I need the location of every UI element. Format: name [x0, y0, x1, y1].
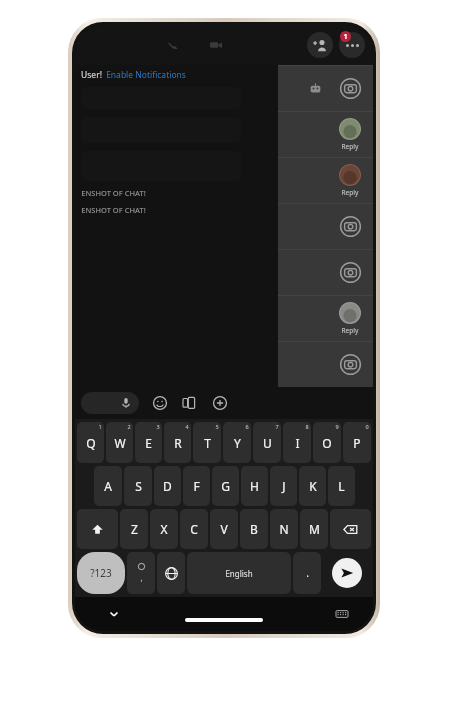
- button[interactable]: R: [164, 422, 191, 463]
- staticText: 3: [156, 423, 160, 430]
- button[interactable]: Shift: [77, 509, 118, 549]
- staticText: ENSHOT OF CHAT!: [81, 188, 146, 198]
- button[interactable]: Camera: [278, 249, 373, 295]
- button[interactable]: Change language: [157, 552, 185, 594]
- button[interactable]: More options: [339, 32, 365, 58]
- button[interactable]: B: [240, 509, 268, 549]
- button[interactable]: Camera: [278, 203, 373, 249]
- staticText: M: [309, 521, 320, 537]
- button[interactable]: Reply: [278, 295, 373, 341]
- staticText: 0: [365, 423, 369, 430]
- button[interactable]: Video call: [205, 34, 227, 56]
- staticText: Reply: [341, 142, 359, 151]
- button[interactable]: F: [183, 466, 210, 506]
- staticText: G: [221, 478, 230, 494]
- staticText: I: [295, 435, 300, 451]
- staticText: 2: [127, 423, 131, 430]
- button[interactable]: Switch keyboard: [331, 603, 353, 625]
- other: Camera: [340, 78, 361, 99]
- button[interactable]: Reply: [278, 111, 373, 157]
- staticText: ENSHOT OF CHAT!: [81, 205, 146, 215]
- staticText: D: [163, 478, 172, 494]
- staticText: F: [193, 478, 200, 494]
- button[interactable]: K: [299, 466, 326, 506]
- button[interactable]: Camera: [278, 341, 373, 387]
- staticText: E: [145, 435, 152, 451]
- staticText: X: [160, 521, 168, 537]
- staticText: .: [306, 566, 309, 580]
- button[interactable]: I: [283, 422, 311, 463]
- staticText: ,: [140, 572, 143, 583]
- button[interactable]: D: [154, 466, 181, 506]
- staticText: N: [279, 521, 289, 537]
- button[interactable]: English: [187, 552, 291, 594]
- staticText: 1: [343, 32, 348, 42]
- staticText: 5: [215, 423, 219, 430]
- button[interactable]: O: [313, 422, 341, 463]
- staticText: Y: [234, 435, 241, 451]
- button[interactable]: Enable Notifications: [106, 69, 186, 81]
- staticText: A: [104, 478, 112, 494]
- button[interactable]: U: [253, 422, 281, 463]
- staticText: English: [225, 568, 253, 579]
- button[interactable]: P: [343, 422, 371, 463]
- staticText: U: [263, 435, 272, 451]
- button[interactable]: L: [328, 466, 355, 506]
- button[interactable]: X: [150, 509, 178, 549]
- button[interactable]: Camera: [278, 65, 373, 111]
- button[interactable]: Send: [323, 552, 371, 594]
- button[interactable]: Y: [223, 422, 251, 463]
- staticText: P: [353, 435, 361, 451]
- button[interactable]: W: [106, 422, 133, 463]
- button[interactable]: H: [241, 466, 268, 506]
- staticText: Q: [86, 435, 96, 451]
- staticText: 9: [335, 423, 339, 430]
- staticText: W: [114, 435, 126, 451]
- button[interactable]: Q: [77, 422, 104, 463]
- button[interactable]: ?123: [77, 552, 125, 594]
- button[interactable]: Emoji and comma: [127, 552, 155, 594]
- staticText: Enable Notifications: [106, 69, 186, 81]
- other: Camera: [340, 354, 361, 375]
- button[interactable]: T: [193, 422, 221, 463]
- button[interactable]: Voice message: [81, 392, 139, 414]
- button[interactable]: V: [210, 509, 238, 549]
- button[interactable]: Call: [161, 34, 183, 56]
- staticText: L: [338, 478, 345, 494]
- staticText: T: [204, 435, 211, 451]
- staticText: Reply: [341, 188, 359, 197]
- button[interactable]: Stickers: [179, 392, 201, 414]
- button[interactable]: J: [270, 466, 297, 506]
- button[interactable]: C: [180, 509, 208, 549]
- button[interactable]: N: [270, 509, 298, 549]
- button[interactable]: A: [94, 466, 122, 506]
- staticText: R: [174, 435, 182, 451]
- button[interactable]: Z: [120, 509, 148, 549]
- staticText: ?123: [90, 566, 112, 580]
- button[interactable]: Backspace: [330, 509, 371, 549]
- staticText: C: [190, 521, 198, 537]
- button[interactable]: E: [135, 422, 162, 463]
- staticText: 8: [305, 423, 309, 430]
- staticText: H: [250, 478, 259, 494]
- button[interactable]: S: [124, 466, 152, 506]
- button[interactable]: M: [300, 509, 328, 549]
- staticText: Z: [131, 521, 138, 537]
- button[interactable]: Add friend: [307, 32, 333, 58]
- button[interactable]: Add attachment: [209, 392, 231, 414]
- button[interactable]: Hide keyboard: [103, 603, 125, 625]
- button[interactable]: Emoji: [149, 392, 171, 414]
- staticText: B: [250, 521, 258, 537]
- staticText: V: [220, 521, 228, 537]
- other: Camera: [340, 262, 361, 283]
- staticText: O: [322, 435, 332, 451]
- button[interactable]: Reply: [278, 157, 373, 203]
- staticText: 7: [275, 423, 279, 430]
- staticText: 4: [185, 423, 189, 430]
- staticText: J: [282, 478, 286, 494]
- button[interactable]: .: [293, 552, 321, 594]
- button[interactable]: G: [212, 466, 239, 506]
